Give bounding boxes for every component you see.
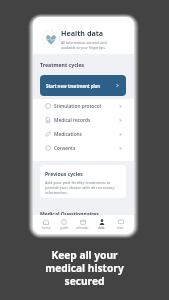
staticText: Treatment cycles [40, 61, 85, 68]
staticText: calendar [76, 226, 89, 230]
staticText: Previous cycles [45, 171, 83, 178]
staticText: Add your past fertility treatments to pr… [45, 180, 115, 195]
staticText: Start new treatment plan [46, 83, 101, 89]
staticText: guide [60, 226, 69, 230]
staticText: chat [117, 226, 124, 230]
button[interactable]: Medications [33, 127, 134, 141]
staticText: All information secured and available at… [61, 40, 107, 50]
button[interactable]: Stimulation protocol [33, 99, 134, 113]
button[interactable]: home [37, 215, 55, 234]
button[interactable]: data [92, 215, 111, 234]
button[interactable]: Start new treatment plan [40, 75, 126, 96]
button[interactable]: Medical records [33, 113, 134, 127]
staticText: Medical records [54, 117, 91, 124]
button[interactable]: calendar [73, 215, 92, 234]
staticText: Health data [61, 28, 104, 38]
staticText: data [98, 226, 105, 230]
staticText: Medications [54, 131, 82, 138]
button[interactable]: Consents [33, 141, 134, 155]
button[interactable]: guide [55, 215, 73, 234]
staticText: home [42, 226, 51, 230]
staticText: Keep all your medical history secured [0, 248, 169, 288]
button[interactable]: chat [111, 215, 130, 234]
button[interactable]: Previous cycles [40, 165, 126, 198]
staticText: Consents [54, 145, 76, 152]
staticText: Medical Questionnaires [40, 211, 99, 218]
staticText: Stimulation protocol [54, 103, 101, 110]
